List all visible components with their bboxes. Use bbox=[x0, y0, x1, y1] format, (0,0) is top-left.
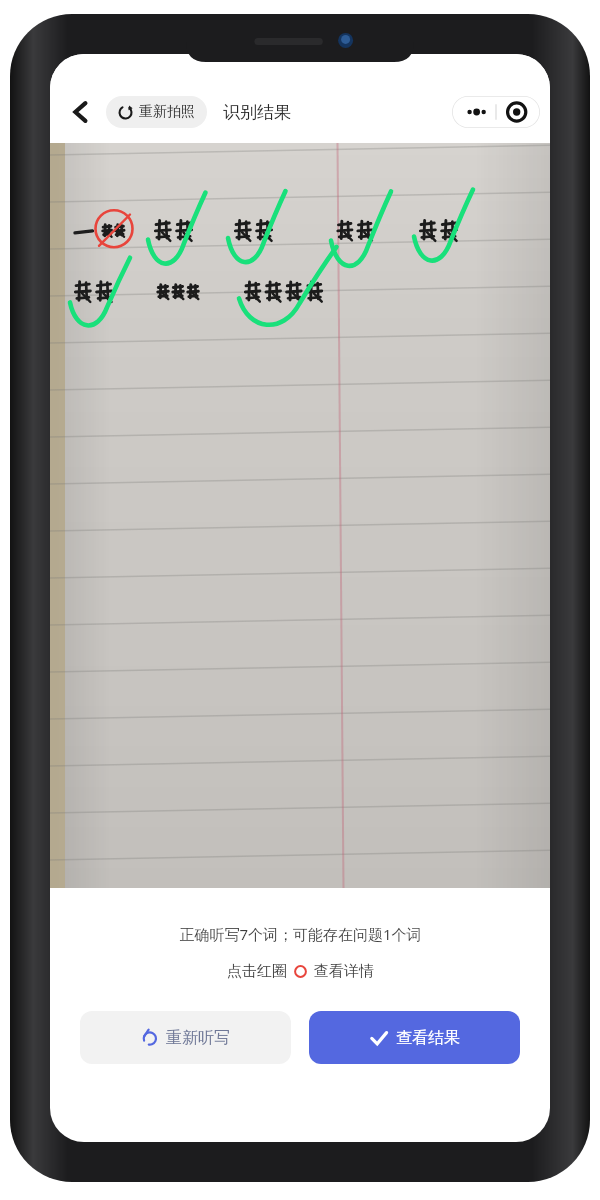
staticText: 点击红圈 bbox=[227, 962, 287, 981]
button[interactable]: More and close bbox=[452, 96, 540, 128]
staticText: 重新听写 bbox=[166, 1028, 230, 1048]
button[interactable]: 查看结果 bbox=[309, 1011, 520, 1064]
button[interactable]: Back bbox=[60, 91, 102, 133]
staticText: 重新拍照 bbox=[139, 103, 195, 121]
staticText: 查看结果 bbox=[396, 1028, 460, 1048]
button[interactable]: 重新听写 bbox=[80, 1011, 291, 1064]
button[interactable]: 重新拍照 bbox=[106, 96, 207, 128]
staticText: 正确听写7个词；可能存在问题1个词 bbox=[179, 924, 422, 944]
staticText: 识别结果 bbox=[223, 102, 291, 123]
staticText: 查看详情 bbox=[314, 962, 374, 981]
